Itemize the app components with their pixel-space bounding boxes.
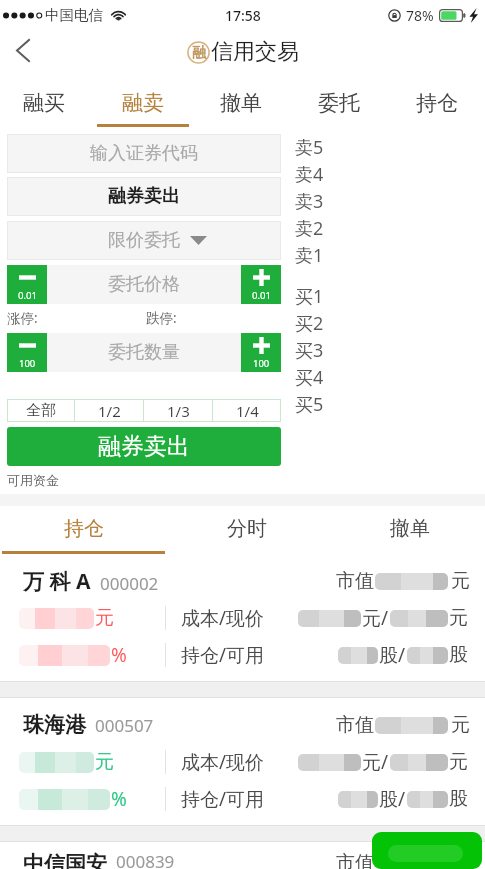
staticText: 股 bbox=[449, 643, 468, 667]
staticText: 股 bbox=[449, 787, 468, 811]
staticText: 股/ bbox=[379, 786, 406, 812]
button[interactable]: Increase bbox=[241, 333, 281, 372]
staticText: 元 bbox=[451, 569, 470, 593]
staticText: 持仓/可用 bbox=[181, 642, 265, 668]
staticText: 元 bbox=[449, 606, 468, 630]
staticText: 卖2 bbox=[295, 216, 324, 241]
staticText: 元 bbox=[95, 750, 114, 774]
staticText: 000839 bbox=[116, 850, 175, 868]
staticText: 卖5 bbox=[295, 135, 324, 160]
staticText: 买4 bbox=[295, 365, 324, 390]
staticText: 买5 bbox=[295, 392, 324, 417]
button[interactable]: 委托数量 bbox=[47, 333, 241, 372]
button[interactable]: 1/3 bbox=[144, 399, 212, 422]
staticText: 融买 bbox=[23, 90, 65, 116]
button[interactable]: 委托 bbox=[290, 74, 388, 128]
button[interactable]: 限价委托 bbox=[7, 221, 281, 260]
staticText: 撤单 bbox=[220, 90, 262, 116]
button[interactable]: 融卖 bbox=[93, 74, 192, 128]
staticText: 成本/现价 bbox=[181, 749, 265, 775]
staticText: 100 bbox=[253, 357, 270, 370]
button[interactable]: 1/4 bbox=[213, 399, 281, 422]
button[interactable]: 1/2 bbox=[75, 399, 143, 422]
staticText: 全部 bbox=[26, 401, 56, 420]
button[interactable]: 输入证券代码 bbox=[7, 134, 281, 173]
staticText: 000002 bbox=[100, 572, 159, 595]
staticText: 可用资金 bbox=[7, 472, 59, 488]
staticText: 买1 bbox=[295, 284, 324, 309]
button[interactable]: 融券卖出 bbox=[7, 177, 281, 216]
button[interactable]: Decrease bbox=[7, 333, 47, 372]
staticText: 元/ bbox=[362, 749, 389, 775]
staticText: 涨停: bbox=[7, 309, 38, 327]
staticText: 17:58 bbox=[225, 6, 261, 25]
button[interactable]: Decrease bbox=[7, 265, 47, 304]
button[interactable]: 撤单 bbox=[328, 506, 485, 554]
button[interactable]: 珠海港 bbox=[0, 698, 485, 825]
button[interactable]: 委托价格 bbox=[47, 265, 241, 304]
staticText: 000507 bbox=[95, 714, 154, 737]
staticText: 78% bbox=[406, 6, 434, 25]
staticText: 元 bbox=[451, 713, 470, 737]
button[interactable]: 融券卖出 bbox=[7, 427, 281, 466]
button[interactable]: 中信国安 bbox=[0, 842, 485, 869]
staticText: % bbox=[111, 642, 127, 668]
staticText: 中国电信 bbox=[45, 6, 103, 24]
staticText: 100 bbox=[19, 357, 36, 370]
staticText: 元/ bbox=[362, 605, 389, 631]
button[interactable]: Increase bbox=[241, 265, 281, 304]
staticText: 成本/现价 bbox=[181, 605, 265, 631]
staticText: 珠海港 bbox=[23, 712, 86, 738]
staticText: 市值 bbox=[336, 713, 374, 737]
staticText: 股/ bbox=[379, 642, 406, 668]
button[interactable]: 万 科 A bbox=[0, 554, 485, 681]
button[interactable]: 持仓 bbox=[388, 74, 485, 128]
staticText: 撤单 bbox=[390, 516, 430, 541]
button[interactable]: 全部 bbox=[7, 399, 74, 422]
staticText: 1/4 bbox=[236, 401, 259, 421]
staticText: 持仓 bbox=[64, 516, 104, 541]
staticText: 持仓/可用 bbox=[181, 786, 265, 812]
staticText: 0.01 bbox=[252, 289, 271, 302]
staticText: 委托数量 bbox=[108, 341, 180, 364]
staticText: 1/3 bbox=[167, 401, 190, 421]
staticText: 融卖 bbox=[122, 90, 164, 116]
button[interactable]: Back bbox=[0, 30, 48, 74]
staticText: % bbox=[111, 786, 127, 812]
staticText: 分时 bbox=[227, 516, 267, 541]
button[interactable]: 融买 bbox=[0, 74, 93, 128]
staticText: 限价委托 bbox=[108, 229, 180, 252]
staticText: 融券卖出 bbox=[98, 432, 190, 461]
staticText: 融 bbox=[192, 44, 206, 62]
staticText: 委托 bbox=[318, 90, 360, 116]
staticText: 买3 bbox=[295, 338, 324, 363]
staticText: 中信国安 bbox=[23, 851, 107, 869]
staticText: 万 科 A bbox=[23, 567, 91, 596]
staticText: 元 bbox=[95, 606, 114, 630]
button[interactable]: Quick action bbox=[372, 832, 482, 869]
staticText: 输入证券代码 bbox=[90, 142, 198, 165]
staticText: 卖1 bbox=[295, 243, 324, 268]
staticText: 元 bbox=[449, 750, 468, 774]
staticText: 卖3 bbox=[295, 189, 324, 214]
button[interactable]: 分时 bbox=[165, 506, 328, 554]
staticText: 委托价格 bbox=[108, 273, 180, 296]
staticText: 买2 bbox=[295, 311, 324, 336]
staticText: 1/2 bbox=[98, 401, 121, 421]
staticText: 市值 bbox=[336, 851, 374, 869]
staticText: 0.01 bbox=[18, 289, 37, 302]
staticText: 信用交易 bbox=[211, 38, 299, 66]
button[interactable]: 撤单 bbox=[192, 74, 290, 128]
staticText: 卖4 bbox=[295, 162, 324, 187]
staticText: 持仓 bbox=[416, 90, 458, 116]
button[interactable]: 持仓 bbox=[2, 506, 165, 554]
staticText: 元 bbox=[451, 851, 470, 869]
staticText: 市值 bbox=[336, 569, 374, 593]
staticText: 融券卖出 bbox=[108, 185, 180, 208]
staticText: 跌停: bbox=[146, 309, 177, 327]
